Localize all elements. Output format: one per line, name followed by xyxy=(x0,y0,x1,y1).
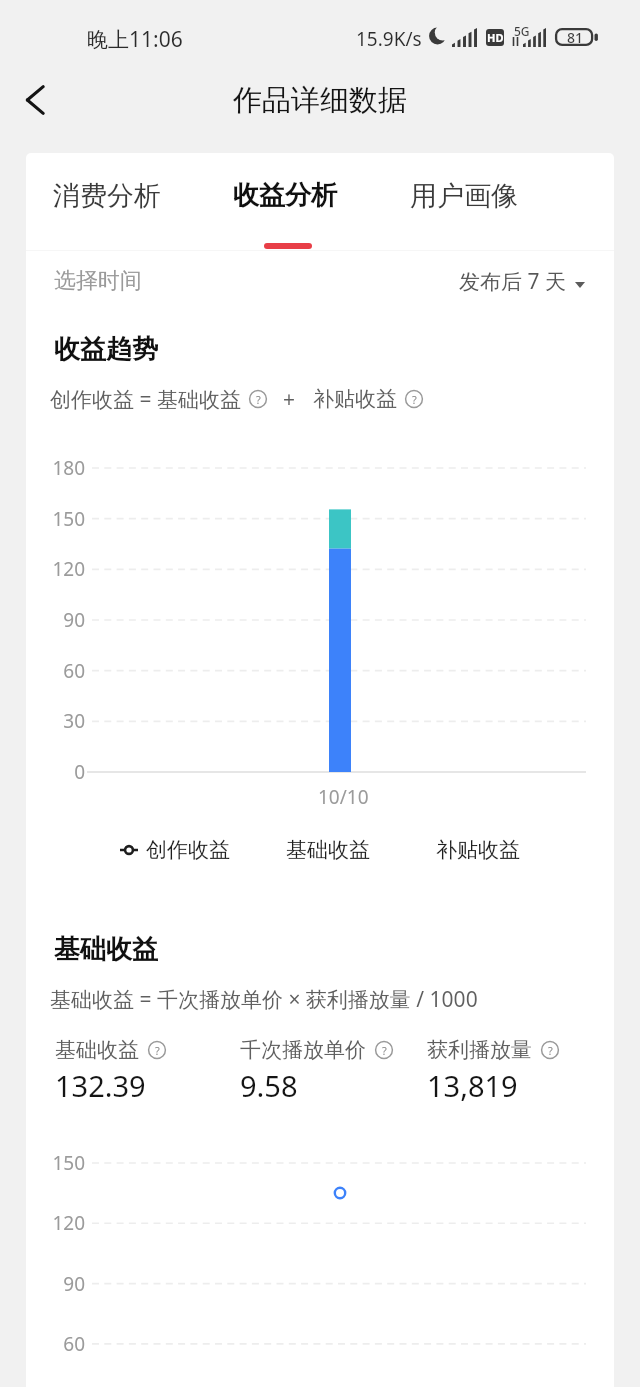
staticText: 180 xyxy=(39,455,85,481)
button[interactable]: 创作收益 xyxy=(120,837,230,863)
staticText: ? xyxy=(155,1043,160,1058)
staticText: 9.58 xyxy=(240,1066,298,1105)
staticText: 150 xyxy=(39,506,85,532)
button[interactable]: 基础收益 xyxy=(286,837,370,863)
staticText: 收益趋势 xyxy=(54,333,158,366)
button[interactable]: 用户画像 xyxy=(398,153,530,253)
staticText: 120 xyxy=(39,1210,85,1236)
staticText: 60 xyxy=(39,658,85,684)
staticText: 5G xyxy=(514,23,530,39)
staticText: ? xyxy=(412,392,417,407)
staticText: 创作收益 xyxy=(146,837,230,863)
staticText: 132.39 xyxy=(55,1066,146,1105)
staticText: 选择时间 xyxy=(54,267,142,295)
staticText: 收益分析 xyxy=(233,179,337,212)
staticText: 10/10 xyxy=(318,784,369,810)
staticText: 补贴收益 xyxy=(436,837,520,863)
staticText: 90 xyxy=(39,607,85,633)
button[interactable]: Back xyxy=(6,70,66,130)
staticText: 消费分析 xyxy=(53,179,161,213)
staticText: 60 xyxy=(39,1331,85,1357)
button[interactable]: 消费分析 xyxy=(41,153,173,253)
staticText: 150 xyxy=(39,1150,85,1176)
staticText: 发布后 7 天 xyxy=(459,267,566,296)
staticText: + xyxy=(283,385,296,413)
staticText: 90 xyxy=(39,1271,85,1297)
staticText: 基础收益 = 千次播放单价 × 获利播放量 / 1000 xyxy=(50,985,478,1014)
staticText: ? xyxy=(382,1043,387,1058)
button[interactable]: 发布后 7 天 xyxy=(459,267,585,296)
staticText: 补贴收益 xyxy=(313,386,397,412)
button[interactable]: 补贴收益 xyxy=(436,837,520,863)
staticText: 81 xyxy=(567,28,584,47)
staticText: 15.9K/s xyxy=(356,26,422,52)
staticText: 120 xyxy=(39,556,85,582)
button[interactable]: 收益分析 xyxy=(219,153,351,253)
staticText: 作品详细数据 xyxy=(233,82,407,119)
staticText: 获利播放量 xyxy=(427,1037,532,1063)
staticText: 基础收益 xyxy=(286,837,370,863)
staticText: 千次播放单价 xyxy=(240,1037,366,1063)
staticText: 基础收益 xyxy=(55,1037,139,1063)
staticText: 13,819 xyxy=(427,1066,518,1105)
staticText: 创作收益 = 基础收益 xyxy=(50,385,241,413)
staticText: HD xyxy=(487,30,504,45)
staticText: 晚上11:06 xyxy=(87,25,183,54)
staticText: 用户画像 xyxy=(410,179,518,213)
staticText: ? xyxy=(548,1043,553,1058)
staticText: 30 xyxy=(39,708,85,734)
staticText: ? xyxy=(256,392,261,407)
staticText: 0 xyxy=(39,759,85,785)
staticText: 基础收益 xyxy=(54,933,158,966)
